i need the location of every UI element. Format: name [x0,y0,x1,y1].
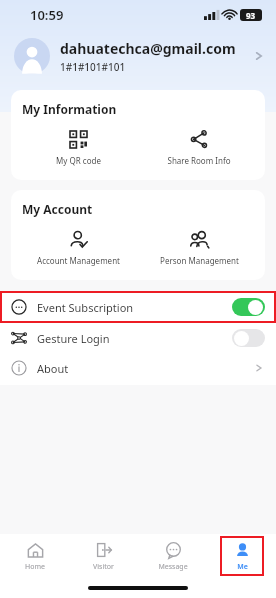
button[interactable]: On [232,298,265,316]
staticText: Me [237,562,248,572]
staticText: Account Management [37,255,120,266]
button[interactable]: Person Management [144,226,254,268]
staticText: My Account [22,201,93,217]
staticText: My Information [22,101,117,117]
button[interactable]: Off [232,329,265,347]
button[interactable]: Home [0,538,69,575]
staticText: About [37,361,253,376]
staticText: Home [25,562,45,572]
staticText: 10:59 [30,6,64,24]
staticText: 93 [246,10,256,21]
staticText: Message [158,562,188,572]
staticText: Visitor [93,562,114,572]
button[interactable]: Account Management [23,226,133,268]
staticText: 1#1#101#101 [60,60,126,74]
button[interactable]: My QR code [23,126,133,168]
button[interactable]: Visitor [69,538,138,575]
staticText: Share Room Info [167,155,231,166]
button[interactable]: About [0,353,276,383]
staticText: Person Management [160,255,239,266]
button[interactable]: Me [220,536,264,576]
staticText: My QR code [56,155,101,166]
button[interactable]: dahuatechca@gmail.com [0,30,276,82]
staticText: dahuatechca@gmail.com [60,39,236,58]
button[interactable]: Gesture Login [0,323,276,353]
staticText: Event Subscription [37,300,232,315]
button[interactable]: Share Room Info [144,126,254,168]
staticText: Gesture Login [37,331,232,346]
button[interactable]: Event Subscription [0,291,276,323]
button[interactable]: Message [138,538,207,575]
